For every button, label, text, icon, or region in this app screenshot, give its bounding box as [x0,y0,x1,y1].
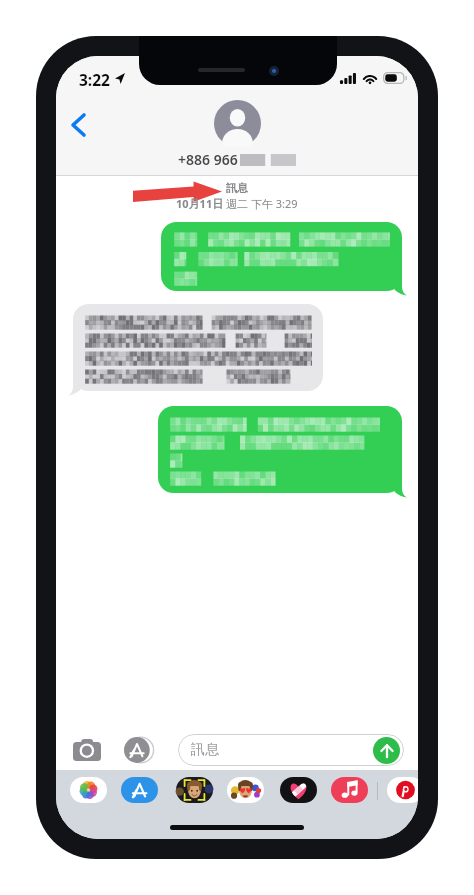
button[interactable]: Fitness [280,777,317,803]
button[interactable]: Pinterest [387,777,418,803]
button[interactable]: App Store [121,777,158,803]
button[interactable]: Back [59,104,97,146]
button[interactable]: Photos [70,777,107,803]
staticText: 訊息 [226,181,248,195]
button[interactable]: 訊息 [178,734,404,766]
button[interactable] [158,406,407,498]
button[interactable]: Send [373,737,400,764]
button[interactable]: Memoji [227,777,264,803]
button[interactable]: Music [331,777,368,803]
button[interactable]: Memoji [176,777,213,803]
staticText: 訊息 [191,741,219,759]
button[interactable]: Camera [69,736,105,764]
button[interactable] [161,222,407,296]
staticText: 3:22 [79,69,110,90]
button[interactable] [68,304,323,396]
staticText: 10月11日 週二 下午 3:29 [176,196,298,211]
button[interactable]: App Store [122,734,154,766]
staticText: +886 966 [178,150,238,169]
